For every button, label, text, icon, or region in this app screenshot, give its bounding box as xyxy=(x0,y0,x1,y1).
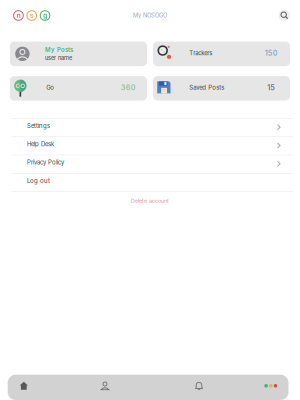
staticText: Saved Posts xyxy=(189,84,224,91)
button[interactable]: My Posts xyxy=(10,42,147,66)
staticText: 15 xyxy=(267,83,275,92)
button[interactable]: Saved Posts xyxy=(153,76,290,101)
button[interactable]: More xyxy=(259,381,283,390)
button[interactable]: Delete account xyxy=(123,192,177,209)
button[interactable]: Profile xyxy=(93,381,117,390)
button[interactable]: Log out xyxy=(11,174,293,191)
staticText: n xyxy=(16,11,20,19)
staticText: Trackers xyxy=(189,49,212,57)
staticText: Delete account xyxy=(131,197,169,204)
button[interactable]: Go xyxy=(10,76,147,101)
button[interactable]: Notifications xyxy=(187,381,211,390)
staticText: Log out xyxy=(27,177,50,184)
button[interactable]: Settings xyxy=(11,119,293,136)
staticText: My Posts xyxy=(45,46,73,53)
staticText: Settings xyxy=(27,122,50,129)
button[interactable]: Help Desk xyxy=(11,137,293,155)
staticText: Help Desk xyxy=(27,140,54,148)
staticText: Privacy Policy xyxy=(27,159,64,166)
button[interactable]: Search xyxy=(278,9,290,21)
button[interactable]: Trackers xyxy=(153,42,290,66)
staticText: 150 xyxy=(265,49,278,58)
button[interactable]: Privacy Policy xyxy=(11,155,293,173)
staticText: Go xyxy=(46,84,54,91)
button[interactable]: Home xyxy=(12,381,36,390)
staticText: user name xyxy=(45,55,72,61)
staticText: 360 xyxy=(121,83,136,92)
staticText: My NOSOGO xyxy=(133,12,167,19)
staticText: s xyxy=(30,11,34,19)
staticText: g xyxy=(43,11,47,19)
